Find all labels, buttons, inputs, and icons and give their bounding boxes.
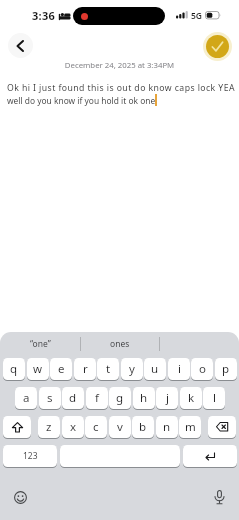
button[interactable]: y bbox=[121, 358, 143, 380]
staticText: e bbox=[58, 361, 65, 377]
button[interactable] bbox=[209, 486, 229, 508]
button[interactable]: v bbox=[109, 416, 131, 438]
button[interactable]: w bbox=[27, 358, 49, 380]
staticText: q bbox=[10, 361, 18, 377]
button[interactable]: j bbox=[156, 387, 178, 409]
staticText: 3:36 bbox=[32, 8, 56, 23]
staticText: m bbox=[185, 419, 196, 435]
button[interactable]: e bbox=[50, 358, 72, 380]
button[interactable]: n bbox=[156, 416, 178, 438]
staticText: 5G bbox=[191, 10, 203, 22]
button[interactable]: r bbox=[74, 358, 96, 380]
button[interactable]: z bbox=[38, 416, 60, 438]
button[interactable]: o bbox=[191, 358, 213, 380]
staticText: n bbox=[163, 419, 171, 435]
staticText: “one” bbox=[30, 338, 51, 350]
staticText: b bbox=[139, 419, 147, 435]
button[interactable]: d bbox=[62, 387, 84, 409]
button[interactable]: q bbox=[3, 358, 25, 380]
button[interactable]: h bbox=[133, 387, 155, 409]
staticText: o bbox=[199, 361, 206, 377]
staticText: 123 bbox=[23, 450, 38, 462]
staticText: y bbox=[129, 361, 135, 377]
staticText: d bbox=[69, 390, 77, 406]
staticText: x bbox=[70, 419, 77, 435]
button[interactable]: s bbox=[39, 387, 61, 409]
staticText: g bbox=[116, 390, 124, 406]
staticText: well do you know if you hold it ok one bbox=[7, 95, 156, 106]
button[interactable] bbox=[8, 33, 33, 58]
staticText: c bbox=[93, 419, 99, 435]
staticText: v bbox=[117, 419, 123, 435]
button[interactable]: l bbox=[203, 387, 225, 409]
button[interactable] bbox=[3, 416, 31, 438]
button[interactable]: c bbox=[85, 416, 107, 438]
staticText: r bbox=[83, 361, 88, 377]
staticText: l bbox=[213, 390, 216, 406]
button[interactable]: u bbox=[144, 358, 166, 380]
staticText: ones bbox=[110, 338, 130, 350]
button[interactable]: t bbox=[97, 358, 119, 380]
staticText: u bbox=[151, 361, 159, 377]
staticText: z bbox=[46, 419, 52, 435]
button[interactable]: 123 bbox=[3, 445, 57, 467]
button[interactable] bbox=[60, 445, 180, 467]
button[interactable]: g bbox=[109, 387, 131, 409]
staticText: k bbox=[188, 390, 195, 406]
staticText: w bbox=[33, 361, 43, 377]
button[interactable]: p bbox=[215, 358, 237, 380]
staticText: a bbox=[23, 390, 30, 406]
staticText: t bbox=[106, 361, 111, 377]
staticText: j bbox=[166, 390, 169, 406]
staticText: i bbox=[178, 361, 181, 377]
staticText: December 24, 2025 at 3:34PM bbox=[0, 60, 239, 71]
button[interactable] bbox=[10, 487, 30, 507]
button[interactable]: a bbox=[15, 387, 37, 409]
button[interactable]: f bbox=[86, 387, 108, 409]
button[interactable] bbox=[183, 445, 237, 467]
staticText: p bbox=[222, 361, 230, 377]
staticText: f bbox=[95, 390, 99, 406]
button[interactable]: m bbox=[179, 416, 201, 438]
button[interactable]: b bbox=[132, 416, 154, 438]
button[interactable]: k bbox=[180, 387, 202, 409]
staticText: Ok hi I just found this is out do know c… bbox=[7, 82, 235, 94]
button[interactable]: i bbox=[168, 358, 190, 380]
button[interactable] bbox=[208, 416, 236, 438]
button[interactable]: “one” bbox=[0, 332, 80, 355]
button[interactable] bbox=[203, 32, 232, 61]
button[interactable]: ones bbox=[80, 332, 160, 355]
button[interactable]: x bbox=[62, 416, 84, 438]
staticText: h bbox=[140, 390, 148, 406]
staticText: s bbox=[47, 390, 53, 406]
